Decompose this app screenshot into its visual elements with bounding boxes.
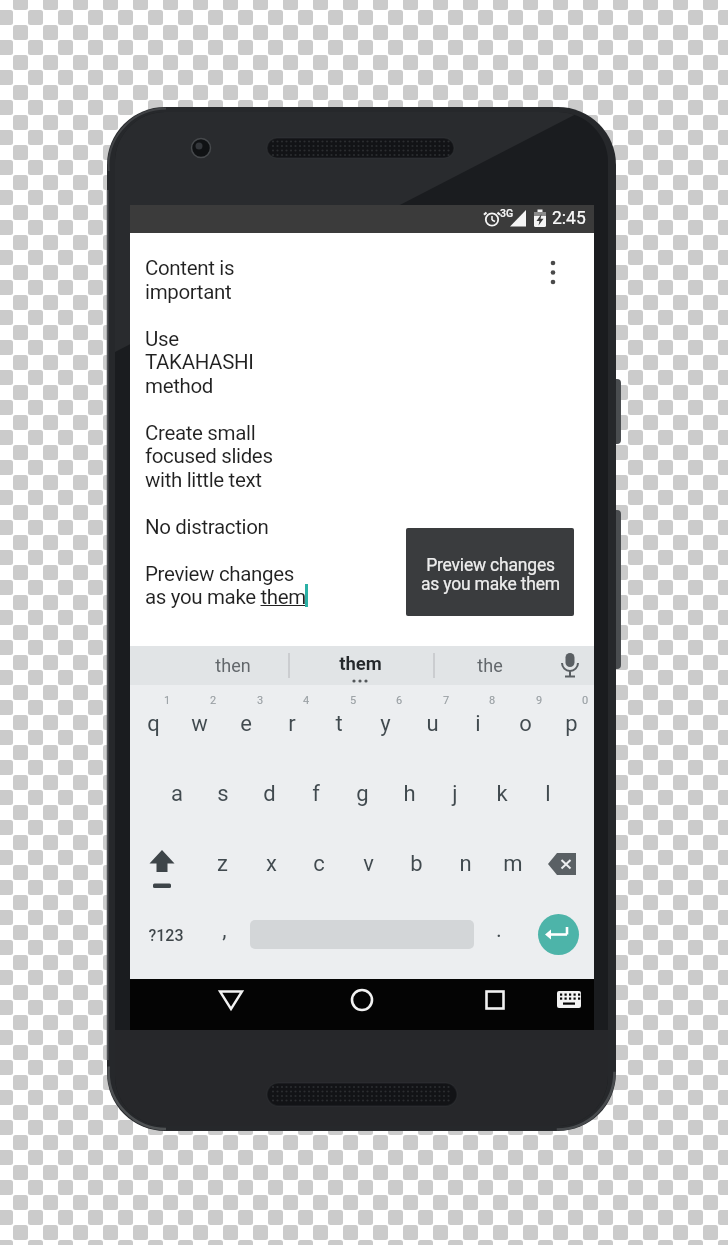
staticText: the: [477, 655, 503, 676]
staticText: t: [335, 711, 343, 737]
staticText: c: [313, 851, 325, 877]
staticText: 7: [443, 694, 450, 707]
staticText: 3: [257, 694, 264, 707]
staticText: j: [452, 781, 458, 807]
staticText: p: [565, 711, 578, 737]
staticText: important: [145, 280, 232, 304]
button[interactable]: [336, 979, 388, 1030]
button[interactable]: r: [270, 704, 314, 744]
staticText: Use: [145, 327, 179, 351]
staticText: h: [403, 781, 416, 807]
staticText: b: [410, 851, 423, 877]
button[interactable]: [290, 646, 433, 685]
staticText: ,: [222, 917, 227, 943]
button[interactable]: [469, 979, 521, 1030]
staticText: k: [496, 781, 508, 807]
staticText: d: [263, 781, 276, 807]
button[interactable]: [205, 979, 257, 1030]
button[interactable]: i: [456, 704, 500, 744]
button[interactable]: n: [443, 844, 487, 884]
button[interactable]: ?123: [144, 915, 188, 955]
staticText: Create small: [145, 421, 256, 445]
button[interactable]: [540, 845, 584, 889]
button[interactable]: [435, 646, 545, 685]
staticText: i: [475, 711, 481, 737]
staticText: them: [339, 653, 382, 675]
button[interactable]: h: [387, 774, 431, 814]
staticText: as you make them: [145, 585, 306, 609]
button[interactable]: [548, 646, 594, 685]
staticText: x: [266, 851, 277, 877]
staticText: o: [519, 711, 532, 737]
staticText: n: [459, 851, 472, 877]
button[interactable]: [140, 845, 184, 889]
button[interactable]: w: [177, 704, 221, 744]
button[interactable]: s: [201, 774, 245, 814]
staticText: .: [496, 917, 502, 943]
button[interactable]: z: [200, 844, 244, 884]
staticText: 4: [303, 694, 310, 707]
staticText: y: [380, 711, 391, 737]
staticText: v: [363, 851, 374, 877]
button[interactable]: g: [340, 774, 384, 814]
staticText: method: [145, 374, 213, 398]
button[interactable]: p: [549, 704, 593, 744]
staticText: g: [356, 781, 369, 807]
staticText: a: [171, 781, 183, 807]
staticText: with little text: [145, 468, 262, 492]
staticText: 9: [536, 694, 543, 707]
staticText: ?123: [148, 926, 184, 945]
button[interactable]: v: [346, 844, 390, 884]
staticText: 8: [489, 694, 496, 707]
button[interactable]: k: [480, 774, 524, 814]
button[interactable]: f: [294, 774, 338, 814]
staticText: q: [147, 711, 160, 737]
staticText: Preview changes: [145, 562, 294, 586]
button[interactable]: j: [433, 774, 477, 814]
button[interactable]: [538, 250, 568, 294]
staticText: 2:45: [552, 208, 586, 229]
staticText: l: [545, 781, 551, 807]
button[interactable]: a: [155, 774, 199, 814]
staticText: Content is: [145, 256, 235, 280]
staticText: u: [426, 711, 439, 737]
staticText: r: [288, 711, 296, 737]
staticText: e: [240, 711, 252, 737]
staticText: s: [217, 781, 229, 807]
staticText: 1: [164, 694, 171, 707]
button[interactable]: e: [224, 704, 268, 744]
button[interactable]: o: [503, 704, 547, 744]
button[interactable]: b: [394, 844, 438, 884]
button[interactable]: [538, 914, 579, 955]
staticText: 2: [210, 694, 217, 707]
staticText: TAKAHASHI: [145, 350, 254, 374]
button[interactable]: l: [526, 774, 570, 814]
staticText: Preview changes as you make them: [421, 555, 560, 594]
staticText: f: [312, 781, 320, 807]
staticText: 3G: [500, 207, 514, 219]
button[interactable]: x: [249, 844, 293, 884]
button[interactable]: d: [247, 774, 291, 814]
staticText: z: [217, 851, 228, 877]
button[interactable]: .: [477, 910, 521, 950]
button[interactable]: [131, 646, 288, 685]
staticText: m: [503, 851, 523, 877]
button[interactable]: c: [297, 844, 341, 884]
staticText: 0: [582, 694, 589, 707]
staticText: focused slides: [145, 444, 273, 468]
staticText: 5: [350, 694, 357, 707]
button[interactable]: u: [410, 704, 454, 744]
button[interactable]: m: [491, 844, 535, 884]
button[interactable]: y: [363, 704, 407, 744]
button[interactable]: ,: [202, 910, 246, 950]
staticText: w: [191, 711, 208, 737]
button[interactable]: t: [317, 704, 361, 744]
staticText: then: [215, 655, 251, 676]
staticText: No distraction: [145, 515, 269, 539]
staticText: 6: [396, 694, 403, 707]
button[interactable]: q: [131, 704, 175, 744]
button[interactable]: [546, 979, 592, 1030]
